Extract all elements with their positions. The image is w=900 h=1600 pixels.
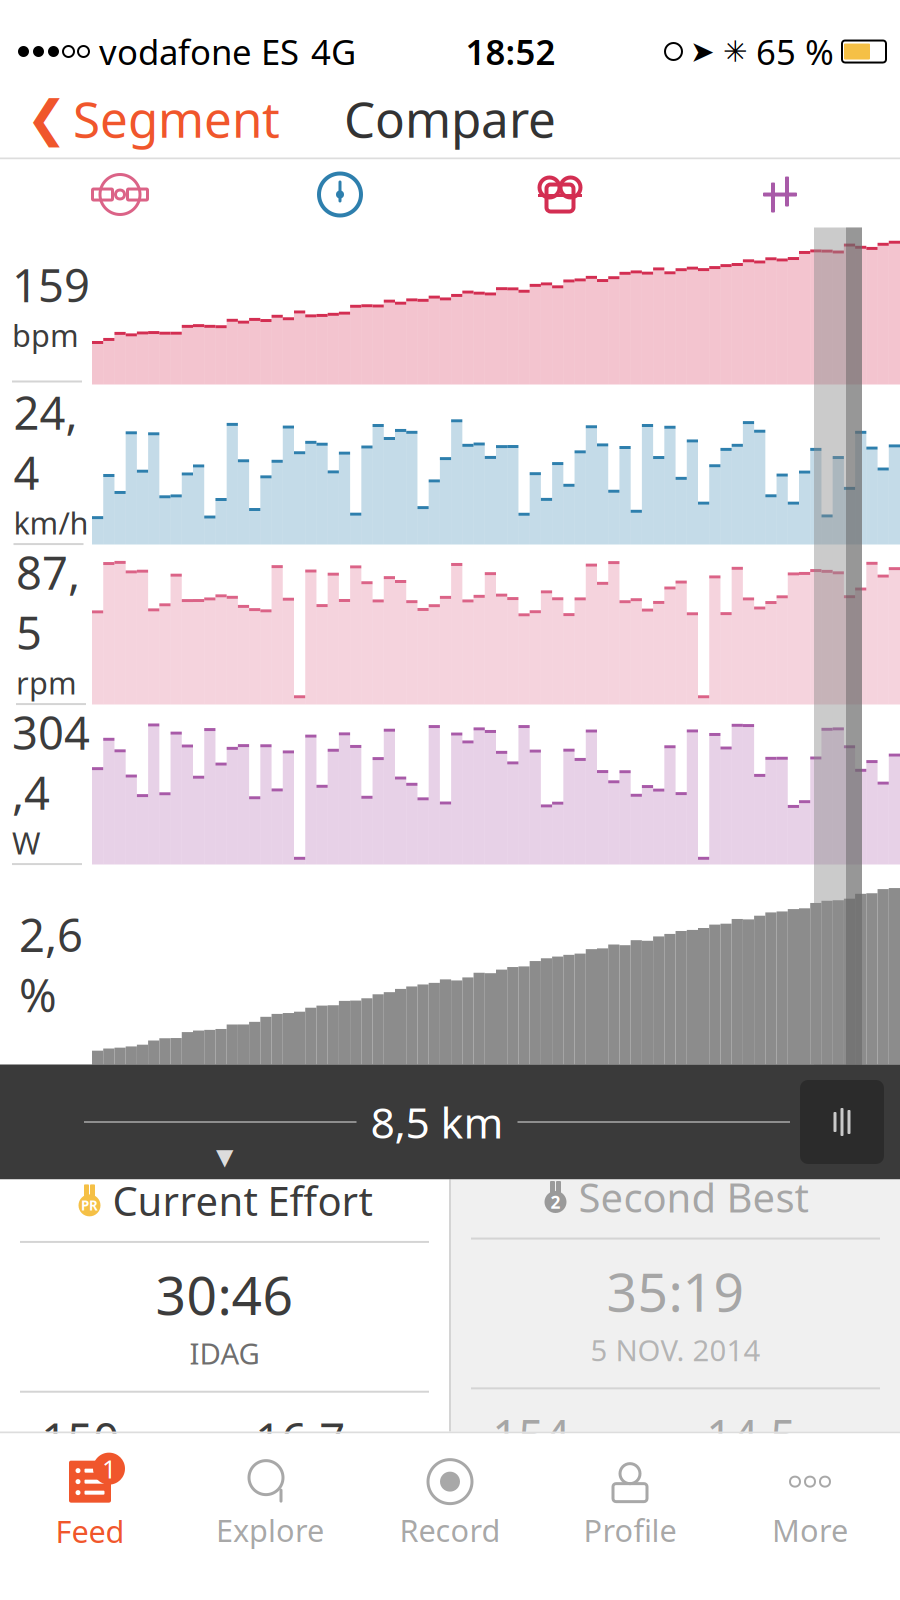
button[interactable]: Heart rate — [530, 170, 590, 218]
staticText: 24,4 — [13, 382, 77, 502]
staticText: Record — [399, 1510, 500, 1550]
staticText: bpm — [120, 1430, 183, 1469]
button[interactable]: ❮ — [0, 78, 280, 159]
staticText: 65 % — [756, 28, 834, 74]
staticText: 304,4 — [12, 702, 90, 822]
staticText: km/h — [797, 1427, 869, 1466]
staticText: bpm — [12, 315, 79, 355]
staticText: More — [772, 1510, 848, 1550]
button[interactable]: Profile — [540, 1452, 720, 1558]
staticText: Explore — [216, 1510, 324, 1550]
staticText: vodafone ES — [99, 28, 299, 74]
button[interactable]: More — [720, 1452, 900, 1558]
button[interactable]: Power — [750, 170, 810, 218]
button[interactable]: Explore — [180, 1452, 360, 1558]
staticText: PR — [81, 1196, 98, 1214]
staticText: ➤ — [690, 35, 715, 68]
staticText: W — [12, 822, 41, 863]
button[interactable]: 1 — [0, 1451, 180, 1559]
staticText: 8,5 km — [370, 1094, 503, 1150]
staticText: 159 — [12, 254, 90, 315]
staticText: bpm — [571, 1427, 634, 1466]
staticText: Second Best — [578, 1170, 808, 1224]
button[interactable]: 2 — [451, 1179, 900, 1431]
staticText: 154 — [492, 1405, 570, 1465]
staticText: Segment — [73, 86, 280, 151]
staticText: ✳ — [723, 35, 748, 68]
staticText: 150 — [41, 1409, 119, 1469]
staticText: IDAG — [189, 1334, 259, 1373]
staticText: 2,6% — [19, 904, 83, 1025]
button[interactable]: Cadence — [90, 170, 150, 218]
button[interactable]: Record — [360, 1452, 540, 1558]
staticText: 14,5 — [706, 1405, 796, 1465]
staticText: 4G — [311, 28, 356, 74]
staticText: 30:46 — [155, 1259, 293, 1330]
staticText: Compare — [344, 86, 556, 151]
staticText: ▼ — [216, 1144, 233, 1170]
staticText: Current Effort — [112, 1174, 372, 1227]
staticText: km/h — [346, 1430, 418, 1469]
staticText: 5 NOV. 2014 — [590, 1330, 760, 1369]
staticText: 16,7 — [255, 1409, 345, 1469]
staticText: 1 — [102, 1452, 116, 1485]
staticText: 2 — [550, 1190, 560, 1213]
staticText: ❮ — [26, 90, 67, 146]
staticText: 35:19 — [606, 1256, 744, 1326]
button[interactable]: ▼ — [0, 1179, 449, 1431]
staticText: Feed — [55, 1511, 124, 1551]
staticText: 18:52 — [465, 28, 555, 74]
button[interactable]: Chart options — [800, 1080, 884, 1164]
staticText: 87,5 — [16, 542, 80, 662]
staticText: rpm — [16, 662, 77, 703]
staticText: km/h — [13, 502, 88, 543]
button[interactable]: Speed — [310, 170, 370, 218]
staticText: Profile — [583, 1510, 676, 1550]
